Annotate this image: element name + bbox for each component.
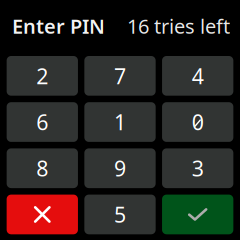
staticText: 16 tries left <box>127 13 230 39</box>
staticText: 8 <box>36 154 48 182</box>
staticText: 3 <box>192 154 204 182</box>
button[interactable]: 9 <box>84 148 156 188</box>
button[interactable]: 8 <box>7 148 78 188</box>
button[interactable]: 4 <box>162 56 233 96</box>
button[interactable]: 7 <box>84 56 156 96</box>
button[interactable]: 2 <box>7 56 78 96</box>
staticText: 9 <box>114 154 126 182</box>
staticText: 4 <box>192 62 204 90</box>
button[interactable]: 3 <box>162 148 233 188</box>
button[interactable]: 6 <box>7 102 78 142</box>
staticText: 7 <box>114 62 126 90</box>
button[interactable]: Confirm <box>162 195 233 234</box>
button[interactable]: 1 <box>84 102 156 142</box>
staticText: 5 <box>114 200 126 229</box>
staticText: 1 <box>114 108 126 136</box>
staticText: 6 <box>36 108 48 136</box>
button[interactable]: 0 <box>162 102 233 142</box>
button[interactable]: 5 <box>84 195 156 234</box>
button[interactable]: Cancel <box>7 195 78 234</box>
staticText: 2 <box>36 62 48 90</box>
staticText: 0 <box>192 108 204 136</box>
staticText: Enter PIN <box>12 13 105 39</box>
